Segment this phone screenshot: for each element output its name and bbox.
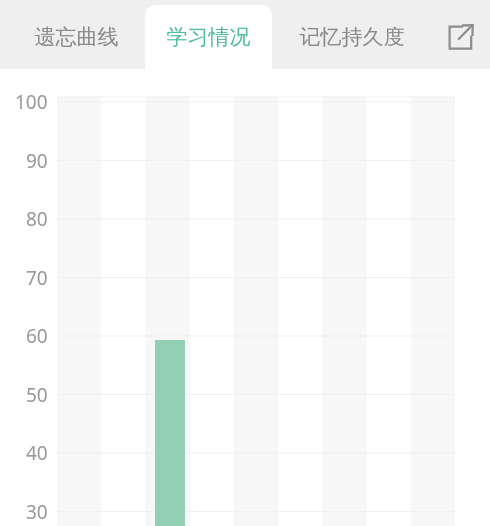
- button[interactable]: [8, 5, 145, 69]
- button[interactable]: [145, 5, 272, 69]
- button[interactable]: Share: [436, 13, 484, 61]
- button[interactable]: [272, 5, 432, 69]
